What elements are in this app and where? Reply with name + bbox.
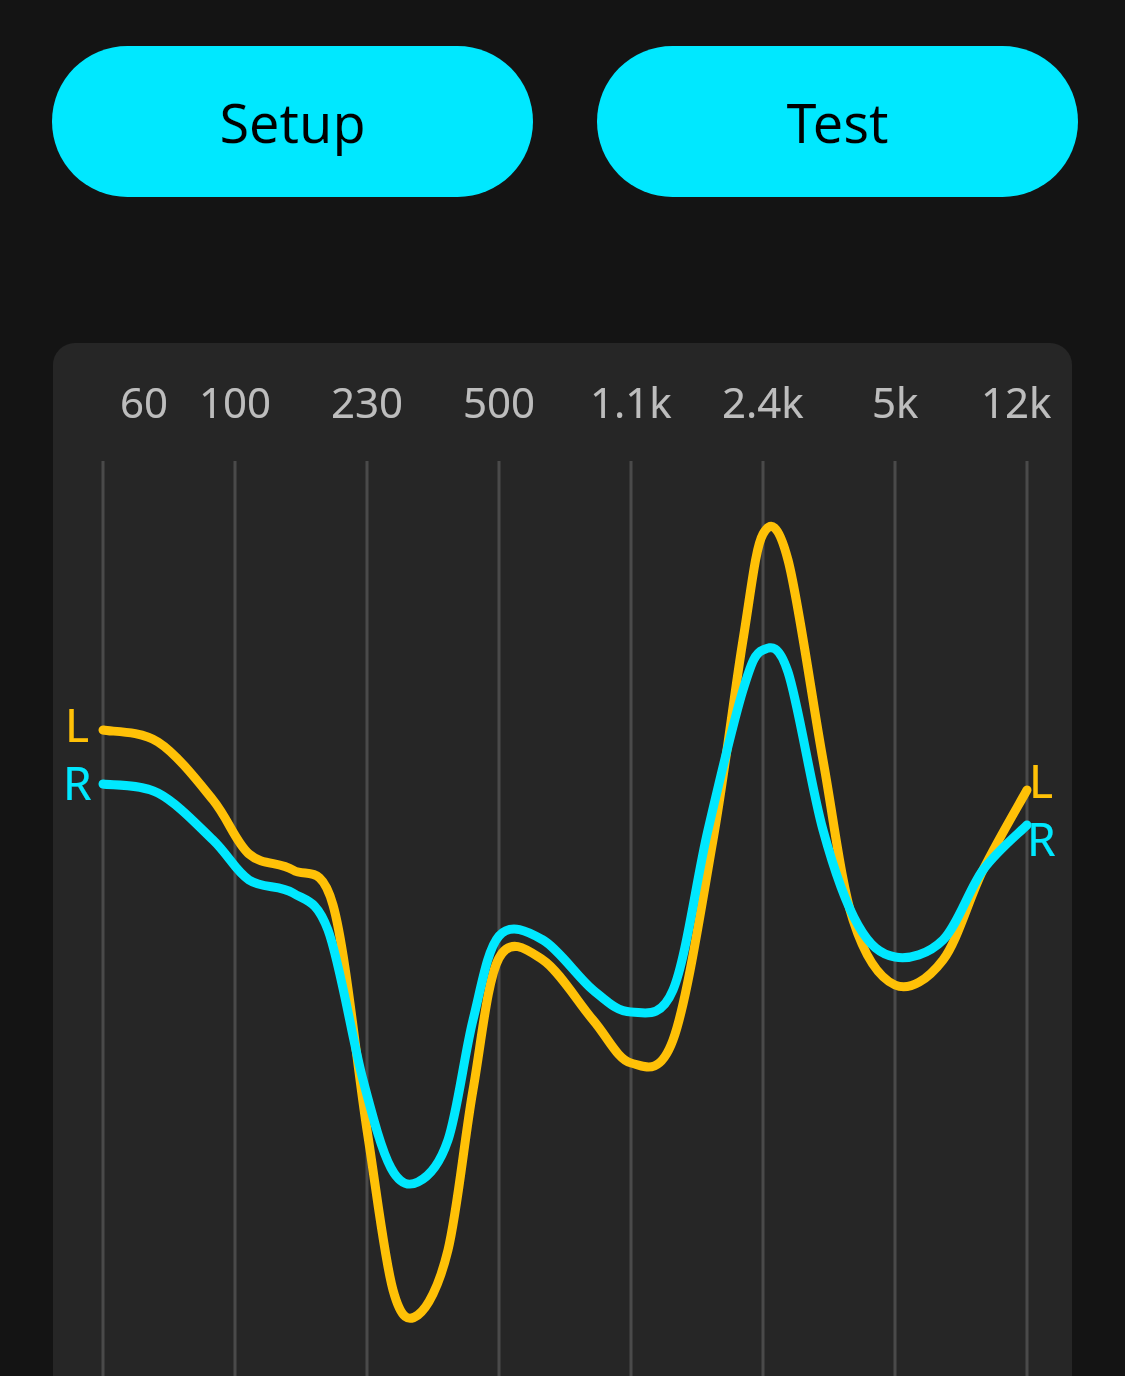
button[interactable]: Test	[597, 46, 1078, 197]
staticText: 1.1k	[590, 373, 672, 430]
button[interactable]: Setup	[52, 46, 533, 197]
staticText: R	[63, 751, 92, 814]
staticText: 5k	[872, 373, 919, 430]
staticText: L	[65, 693, 90, 756]
staticText: 230	[331, 373, 404, 430]
staticText: L	[1029, 749, 1054, 812]
staticText: 60	[120, 373, 169, 430]
staticText: 100	[199, 373, 272, 430]
staticText: R	[1027, 807, 1056, 870]
staticText: Setup	[219, 85, 366, 159]
staticText: Test	[786, 85, 889, 159]
staticText: 500	[463, 373, 536, 430]
staticText: 2.4k	[722, 373, 804, 430]
staticText: 12k	[981, 373, 1052, 430]
